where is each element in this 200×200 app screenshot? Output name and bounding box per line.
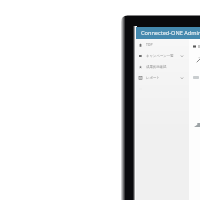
staticText: TOP bbox=[146, 42, 153, 47]
staticText: 成果状況確認 bbox=[146, 65, 167, 69]
button[interactable]: TOP bbox=[136, 39, 189, 50]
staticText: レポート bbox=[146, 76, 160, 80]
other: Trend bbox=[197, 57, 200, 62]
button[interactable]: Breadcrumb bbox=[193, 45, 200, 48]
button[interactable]: Connected-ONE Admin bbox=[136, 27, 200, 39]
button[interactable]: キャンペーン一覧 bbox=[136, 50, 189, 61]
button[interactable]: レポート bbox=[136, 72, 189, 83]
other: Chart bbox=[194, 123, 200, 127]
staticText: Connected-ONE Admin bbox=[141, 29, 200, 37]
button[interactable] bbox=[193, 76, 199, 79]
button[interactable]: 成果状況確認 bbox=[136, 61, 189, 72]
staticText: キャンペーン一覧 bbox=[146, 54, 174, 58]
